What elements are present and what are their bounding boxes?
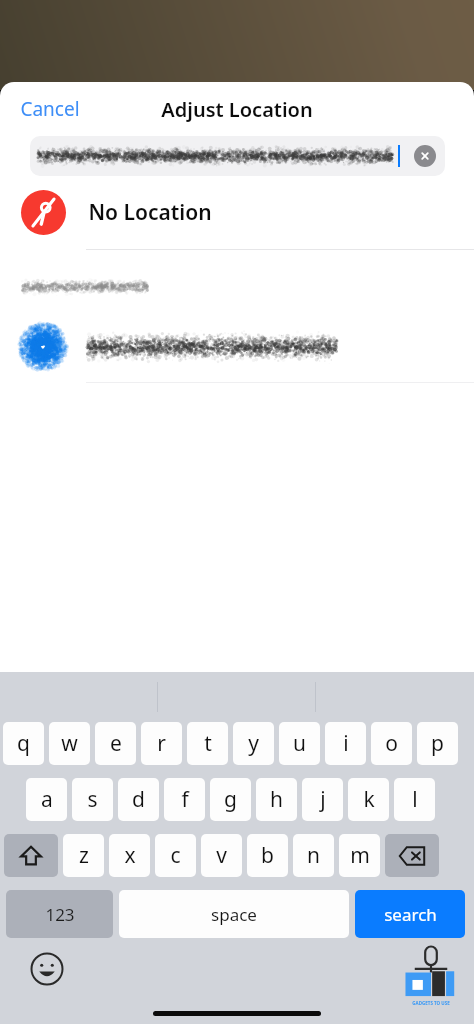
staticText: k — [363, 785, 375, 814]
button[interactable]: Emoji keyboard — [30, 952, 64, 986]
staticText: j — [320, 785, 326, 814]
button[interactable]: d — [118, 778, 159, 821]
staticText: m — [350, 841, 370, 870]
button[interactable]: k — [348, 778, 389, 821]
button[interactable]: z — [63, 834, 104, 877]
button[interactable]: g — [210, 778, 251, 821]
staticText: x — [124, 841, 136, 870]
staticText: No Location — [88, 198, 212, 227]
staticText: p — [431, 729, 444, 758]
staticText: a — [41, 785, 53, 814]
button[interactable]: Clear text — [414, 145, 436, 167]
staticText: Cancel — [20, 96, 80, 122]
button[interactable]: x — [109, 834, 150, 877]
staticText: q — [17, 729, 30, 758]
button[interactable]: b — [247, 834, 288, 877]
button[interactable]: s — [72, 778, 113, 821]
button[interactable]: e — [95, 722, 136, 765]
button[interactable]: p — [417, 722, 458, 765]
button[interactable]: q — [3, 722, 44, 765]
staticText: o — [385, 729, 398, 758]
button[interactable]: space — [119, 890, 349, 938]
staticText: v — [216, 841, 227, 870]
staticText: r — [157, 729, 166, 758]
staticText: y — [248, 729, 259, 758]
staticText: h — [270, 785, 283, 814]
button[interactable]: m — [339, 834, 380, 877]
staticText: z — [79, 841, 89, 870]
staticText: n — [307, 841, 320, 870]
staticText: w — [61, 729, 78, 758]
staticText: g — [224, 785, 237, 814]
button[interactable]: a — [26, 778, 67, 821]
button[interactable]: Shift — [4, 834, 58, 877]
staticText: search — [384, 903, 437, 926]
button[interactable]: No Location — [0, 176, 474, 249]
staticText: u — [293, 729, 306, 758]
button[interactable]: 123 — [6, 890, 113, 938]
button[interactable]: v — [201, 834, 242, 877]
button[interactable]: l — [394, 778, 435, 821]
button[interactable]: i — [325, 722, 366, 765]
staticText: t — [204, 729, 212, 758]
staticText: l — [412, 785, 418, 814]
staticText: space — [211, 903, 257, 926]
staticText: f — [181, 785, 189, 814]
button[interactable]: Clear text — [30, 136, 445, 176]
button[interactable]: w — [49, 722, 90, 765]
button[interactable]: f — [164, 778, 205, 821]
button[interactable]: j — [302, 778, 343, 821]
button[interactable]: n — [293, 834, 334, 877]
button[interactable]: search — [355, 890, 465, 938]
button[interactable]: r — [141, 722, 182, 765]
button[interactable]: Backspace — [385, 834, 439, 877]
staticText: s — [87, 785, 98, 814]
button[interactable]: y — [233, 722, 274, 765]
staticText: e — [110, 729, 122, 758]
staticText: 123 — [45, 903, 75, 926]
button[interactable]: o — [371, 722, 412, 765]
button[interactable]: c — [155, 834, 196, 877]
staticText: GADGETS TO USE — [412, 1000, 450, 1006]
staticText: c — [170, 841, 181, 870]
button[interactable]: t — [187, 722, 228, 765]
staticText: b — [261, 841, 274, 870]
button[interactable]: Cancel — [8, 90, 92, 128]
button[interactable]: h — [256, 778, 297, 821]
staticText: i — [343, 729, 349, 758]
staticText: Adjust Location — [161, 96, 313, 123]
button[interactable]: u — [279, 722, 320, 765]
button[interactable] — [0, 316, 474, 378]
staticText: d — [132, 785, 145, 814]
